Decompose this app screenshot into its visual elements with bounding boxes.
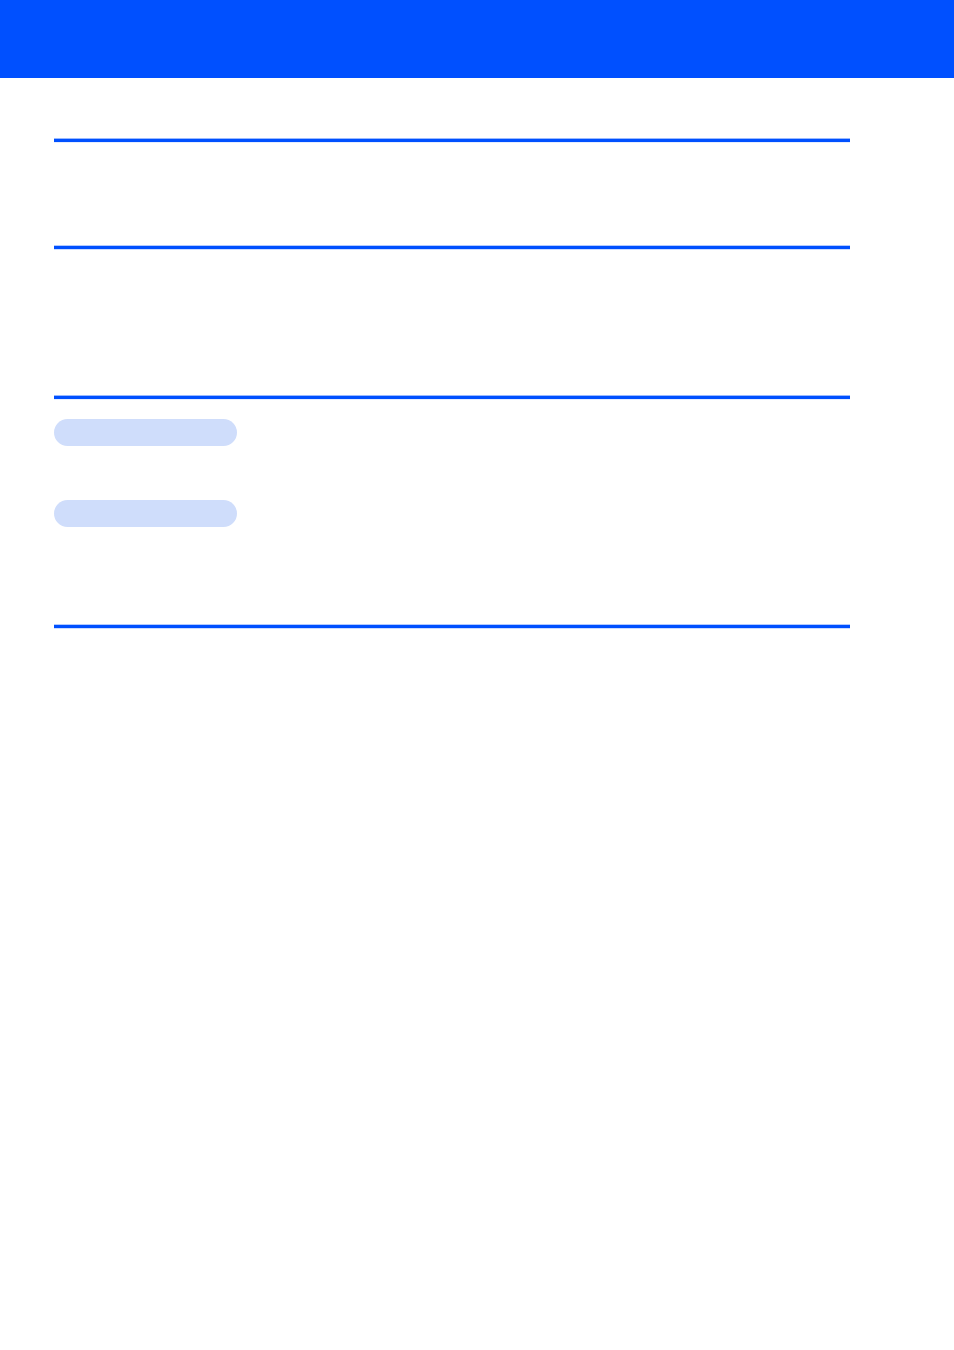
button[interactable]: Primary action	[54, 419, 237, 446]
button[interactable]: Secondary action	[54, 500, 237, 527]
